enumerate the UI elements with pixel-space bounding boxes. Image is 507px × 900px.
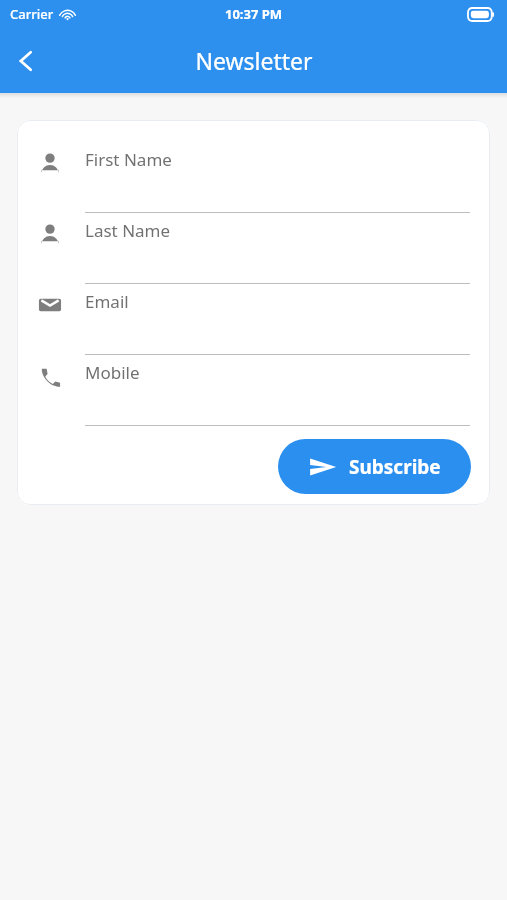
staticText: Last Name	[85, 219, 171, 242]
button[interactable]: Back	[0, 35, 52, 87]
staticText: Carrier	[10, 5, 54, 23]
button[interactable]: Subscribe	[278, 439, 471, 494]
staticText: Newsletter	[195, 45, 313, 76]
button[interactable]: Mobile	[17, 355, 490, 426]
button[interactable]: Email	[17, 284, 490, 355]
staticText: Mobile	[85, 361, 140, 384]
staticText: First Name	[85, 148, 172, 171]
button[interactable]: First Name	[17, 142, 490, 213]
button[interactable]: Last Name	[17, 213, 490, 284]
staticText: Email	[85, 290, 129, 313]
staticText: 10:37 PM	[225, 5, 283, 23]
staticText: Subscribe	[349, 454, 441, 480]
